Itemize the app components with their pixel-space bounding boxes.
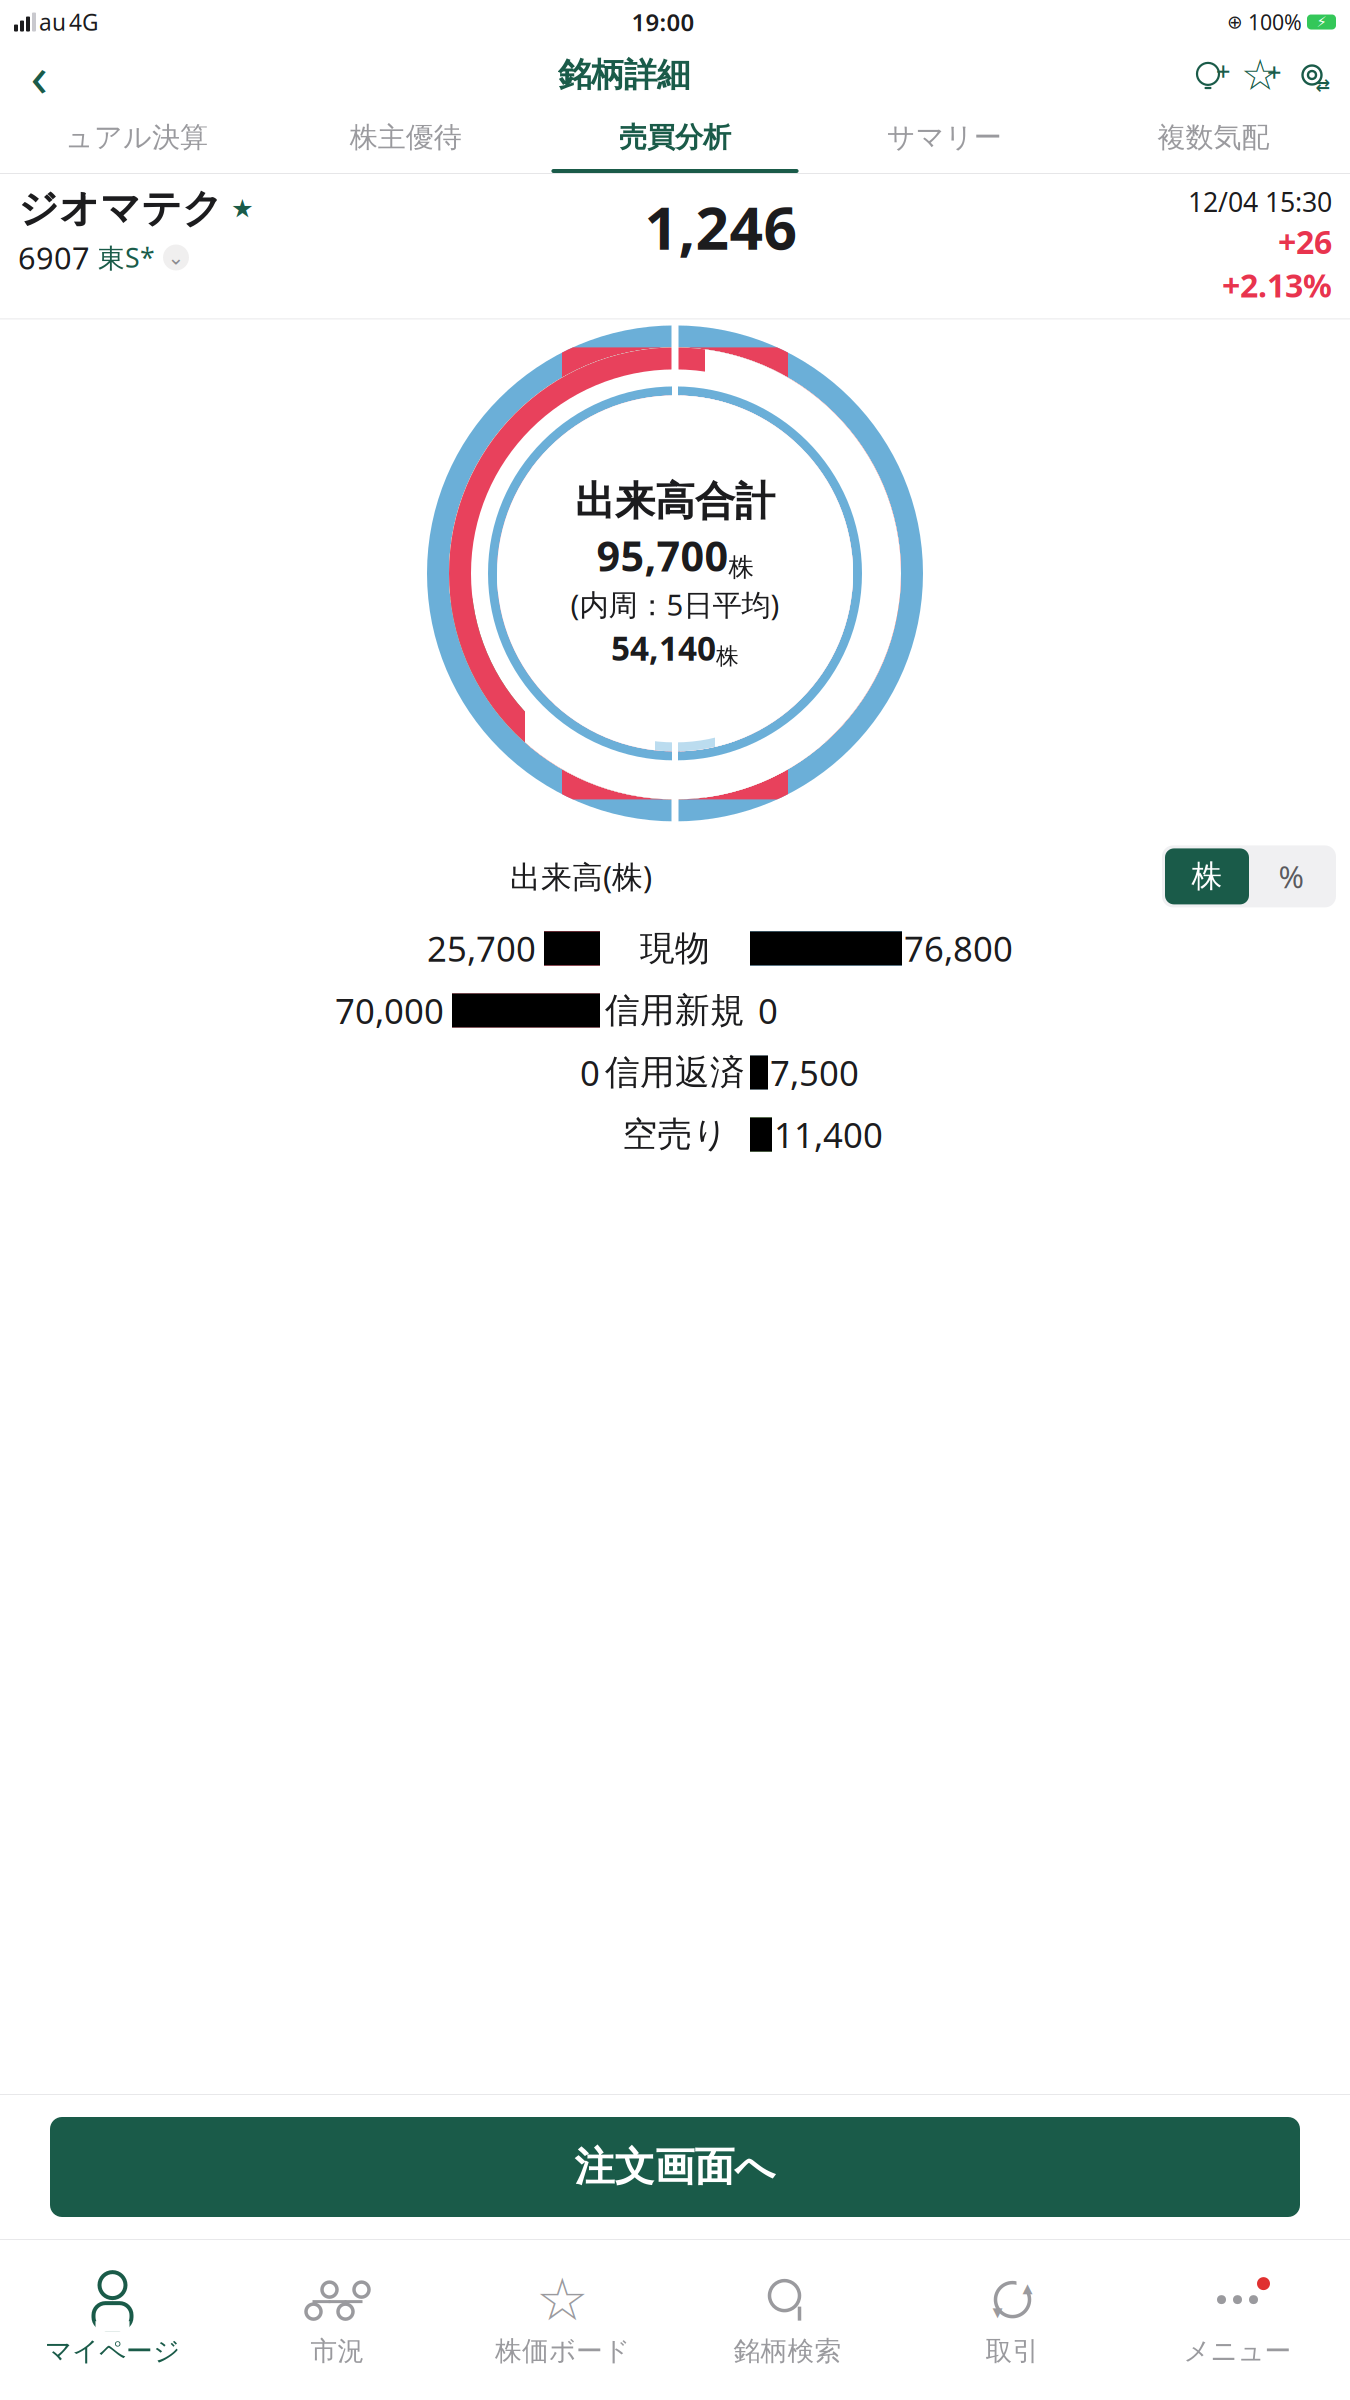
staticText: ▴ xyxy=(1022,2276,1032,2299)
staticText: 売買分析 xyxy=(619,120,731,155)
staticText: ★ xyxy=(231,194,254,223)
staticText: メニュー xyxy=(1183,2335,1291,2367)
staticText: ☆ xyxy=(1241,51,1279,99)
button[interactable]: アラート追加 xyxy=(1182,49,1234,101)
staticText: 銘柄検索 xyxy=(733,2335,841,2367)
staticText: 出来高合計 xyxy=(575,477,775,526)
staticText: % xyxy=(1278,856,1303,897)
button[interactable]: 注文画面へ xyxy=(50,2117,1300,2217)
button[interactable]: 株主優待 xyxy=(271,106,540,173)
button[interactable]: ▴ xyxy=(900,2245,1125,2395)
staticText: ジオマテク xyxy=(18,184,223,233)
staticText: 株主優待 xyxy=(350,120,462,155)
staticText: 1,246 xyxy=(644,188,797,266)
staticText: 12/04 15:30 xyxy=(1188,184,1332,219)
staticText: ‹ xyxy=(30,38,47,112)
staticText: 東S* xyxy=(98,240,155,275)
staticText: +26 xyxy=(1278,220,1332,263)
staticText: 4G xyxy=(69,7,99,37)
staticText: 信用新規 xyxy=(605,989,745,1032)
staticText: 0 xyxy=(758,987,778,1033)
staticText: マイページ xyxy=(45,2335,180,2367)
button[interactable]: ☆ xyxy=(450,2245,675,2395)
staticText: + xyxy=(1267,55,1281,89)
staticText: ☆ xyxy=(536,2266,589,2333)
staticText: ⇄ xyxy=(1315,75,1330,95)
button[interactable]: % xyxy=(1249,848,1333,904)
staticText: サマリー xyxy=(887,120,1002,155)
button[interactable]: 株 xyxy=(1165,848,1249,904)
button[interactable]: 売買分析 xyxy=(540,106,810,173)
staticText: 現物 xyxy=(640,927,710,970)
staticText: 銘柄詳細 xyxy=(558,54,690,95)
staticText: 70,000 xyxy=(335,987,444,1033)
button[interactable]: マイページ xyxy=(0,2245,225,2395)
staticText: 株価ボード xyxy=(495,2335,630,2367)
staticText: 出来高(株) xyxy=(510,856,652,897)
staticText: 0 xyxy=(580,1049,600,1095)
staticText: 25,700 xyxy=(427,925,536,971)
button[interactable]: ュアル決算 xyxy=(2,106,271,173)
staticText: 株 xyxy=(728,552,753,583)
staticText: ⚡︎ xyxy=(1316,14,1326,30)
staticText: 76,800 xyxy=(904,925,1013,971)
staticText: 95,700 xyxy=(596,528,728,583)
button[interactable]: 設定 xyxy=(1286,49,1338,101)
staticText: ュアル決算 xyxy=(65,120,208,155)
staticText: 複数気配 xyxy=(1157,120,1269,155)
staticText: 株 xyxy=(716,642,739,670)
button[interactable]: 市況 xyxy=(225,2245,450,2395)
staticText: 市況 xyxy=(310,2335,364,2367)
staticText: 11,400 xyxy=(774,1111,883,1157)
button[interactable]: 複数気配 xyxy=(1079,106,1348,173)
staticText: 空売り xyxy=(622,1113,727,1156)
staticText: 注文画面へ xyxy=(574,2142,775,2191)
staticText: + xyxy=(1216,54,1230,88)
staticText: +2.13% xyxy=(1222,264,1332,306)
staticText: (内周：5日平均) xyxy=(570,585,779,624)
staticText: 6907 xyxy=(18,237,90,278)
staticText: 54,140 xyxy=(611,626,716,670)
staticText: 19:00 xyxy=(631,6,694,38)
button[interactable]: 戻る xyxy=(12,48,66,102)
staticText: ⊕ xyxy=(1227,11,1243,33)
button[interactable]: お気に入り追加 xyxy=(1234,49,1286,101)
staticText: 信用返済 xyxy=(605,1051,745,1094)
button[interactable]: メニュー xyxy=(1125,2245,1350,2395)
button[interactable]: サマリー xyxy=(810,106,1079,173)
staticText: ▾ xyxy=(992,2300,1002,2323)
staticText: ⌄ xyxy=(167,246,184,269)
button[interactable]: 銘柄検索 xyxy=(675,2245,900,2395)
staticText: 7,500 xyxy=(770,1049,859,1095)
staticText: 株 xyxy=(1191,858,1222,895)
button[interactable]: 6907 xyxy=(18,237,189,278)
staticText: 取引 xyxy=(985,2335,1039,2367)
staticText: au xyxy=(39,7,66,37)
staticText: 100% xyxy=(1248,8,1302,36)
